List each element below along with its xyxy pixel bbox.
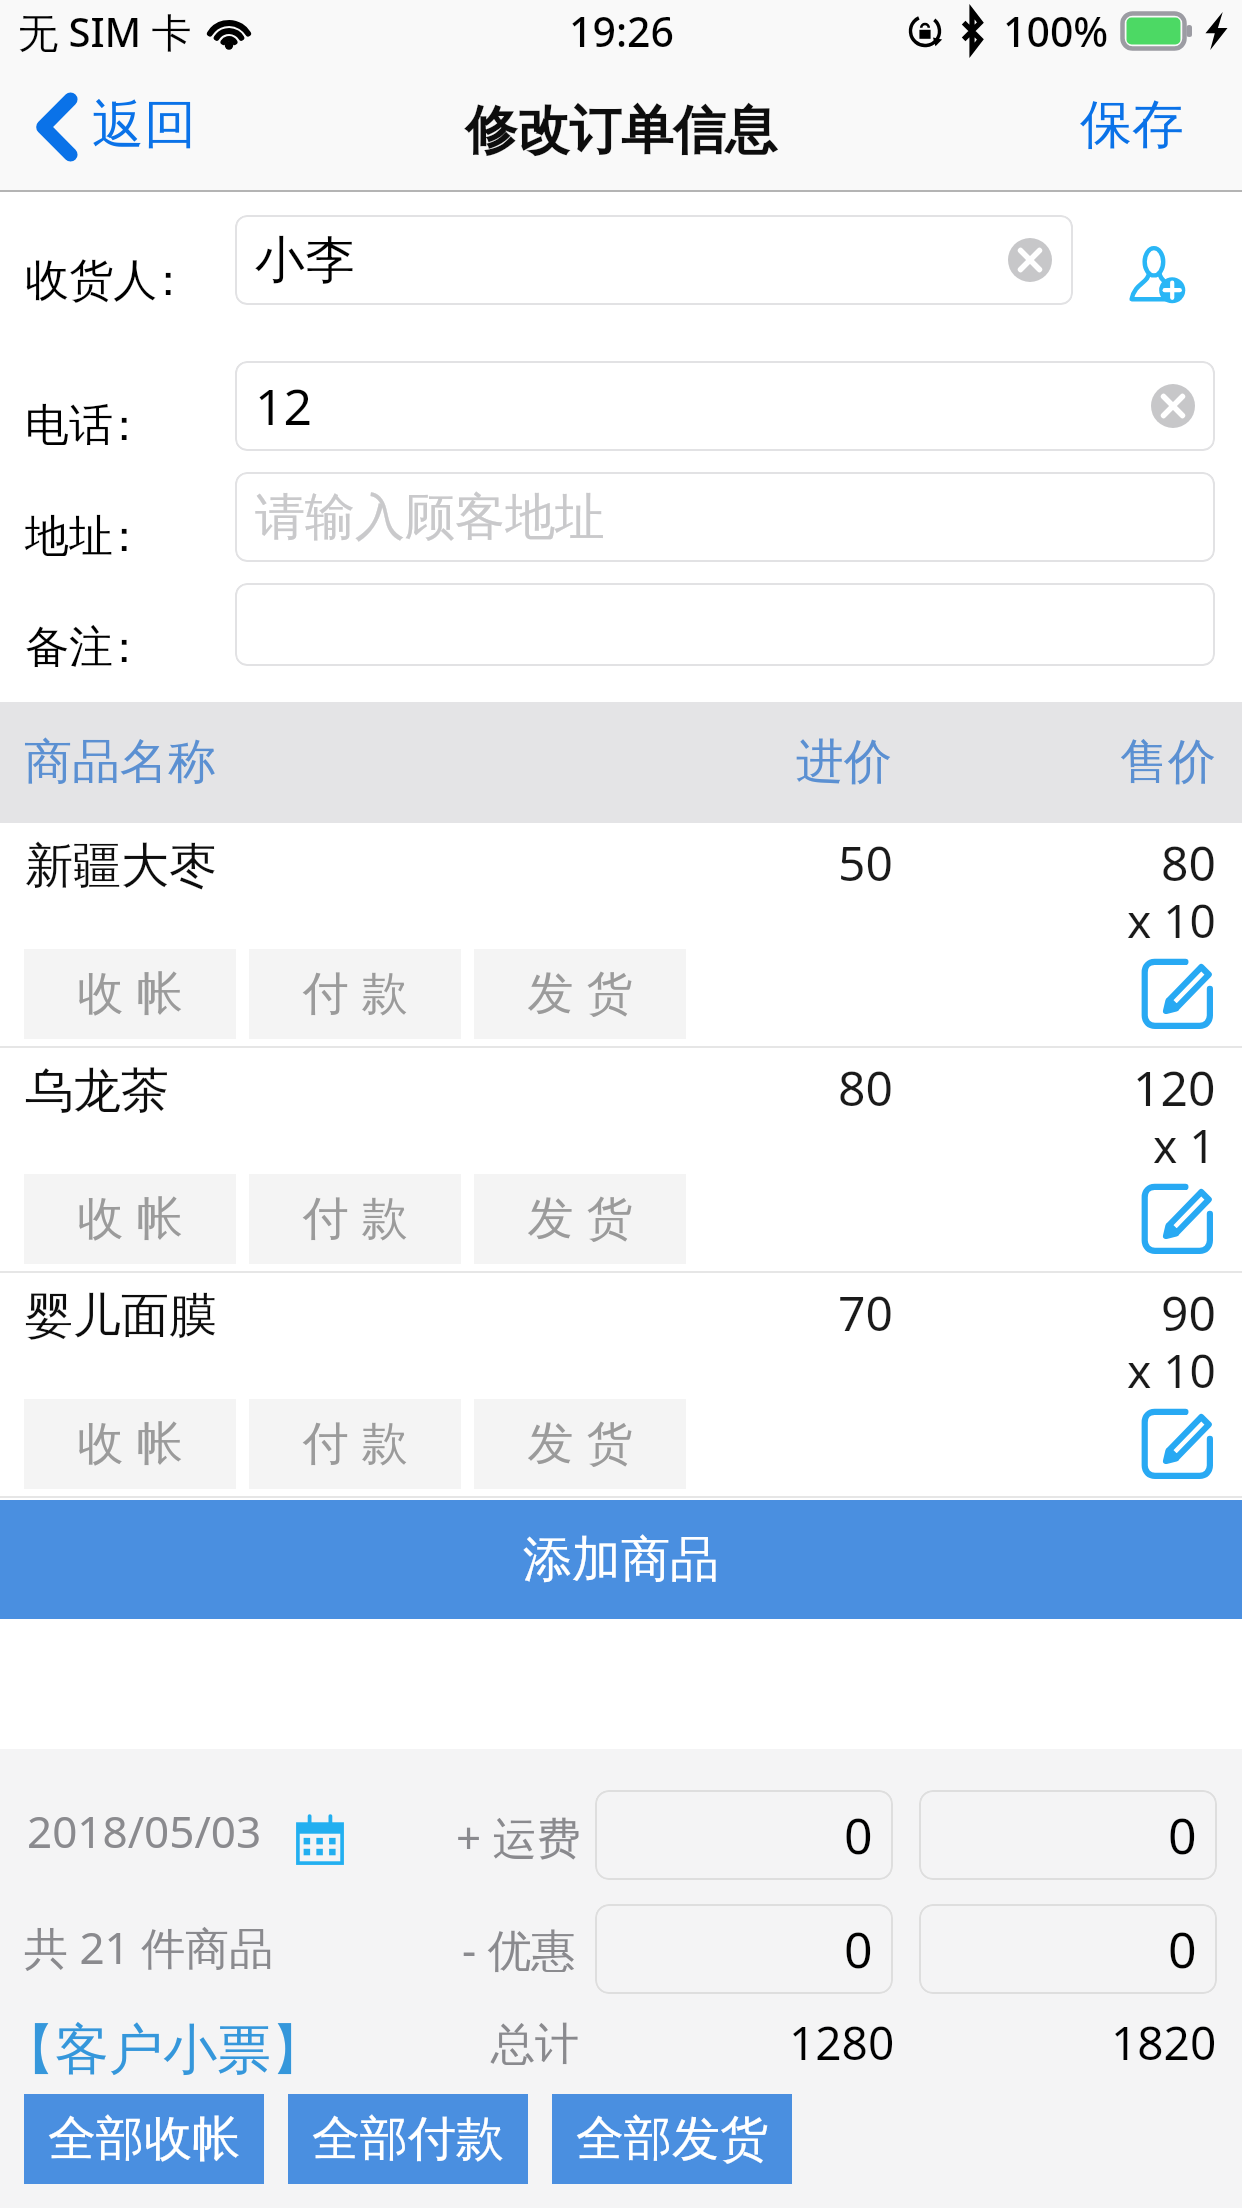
staticText: 添加商品 [523, 1529, 719, 1591]
staticText: 80 [1161, 830, 1216, 895]
staticText: ： [102, 509, 146, 564]
staticText: 无 SIM 卡 [18, 4, 192, 59]
button[interactable]: Clear [1151, 384, 1195, 428]
button[interactable]: 付款 [249, 1399, 461, 1489]
staticText: 0 [844, 1801, 873, 1869]
button[interactable]: 0 [919, 1790, 1217, 1880]
staticText: 婴儿面膜 [25, 1286, 217, 1346]
staticText: ： [102, 398, 146, 453]
staticText: 付款 [296, 1190, 414, 1248]
staticText: 收货人 [25, 253, 157, 308]
button[interactable]: 全部付款 [288, 2094, 528, 2184]
staticText: + 运费 [456, 1807, 581, 1867]
staticText: 商品名称 [24, 732, 216, 792]
button[interactable]: 全部发货 [552, 2094, 792, 2184]
button[interactable]: 全部收帐 [24, 2094, 264, 2184]
staticText: 总计 [491, 2017, 579, 2072]
staticText: 全部发货 [576, 2109, 768, 2169]
staticText: 保存 [1080, 92, 1184, 158]
staticText: 90 [1161, 1280, 1216, 1345]
staticText: 新疆大枣 [25, 836, 217, 896]
button[interactable]: 发货 [474, 1174, 686, 1264]
button[interactable]: 0 [919, 1904, 1217, 1994]
button[interactable]: 【客户小票】 [1, 2016, 325, 2084]
button[interactable]: Edit item [1138, 954, 1217, 1033]
button[interactable]: 添加商品 [0, 1500, 1242, 1619]
staticText: ： [146, 253, 190, 308]
button[interactable]: Edit item [1138, 1404, 1217, 1483]
staticText: 进价 [796, 732, 892, 792]
button[interactable]: 发货 [474, 1399, 686, 1489]
button[interactable]: 收帐 [24, 1174, 236, 1264]
staticText: 修改订单信息 [465, 98, 777, 164]
staticText: 请输入顾客地址 [255, 486, 605, 549]
staticText: 1820 [1111, 2011, 1217, 2074]
staticText: 乌龙茶 [25, 1061, 169, 1121]
button[interactable]: 0 [595, 1904, 893, 1994]
staticText: 返回 [92, 92, 196, 158]
staticText: 70 [838, 1280, 893, 1345]
staticText: 发货 [521, 965, 639, 1023]
staticText: x 10 [1127, 889, 1216, 952]
staticText: 80 [838, 1055, 893, 1120]
button[interactable]: 0 [595, 1790, 893, 1880]
staticText: 1280 [789, 2011, 895, 2074]
staticText: 0 [844, 1915, 873, 1983]
staticText: 100% [1003, 3, 1109, 59]
staticText: 0 [1168, 1801, 1197, 1869]
staticText: 付款 [296, 1415, 414, 1473]
button[interactable]: 12 [235, 361, 1215, 451]
button[interactable]: Clear [1008, 238, 1052, 282]
staticText: - 优惠 [462, 1919, 576, 1979]
staticText: 50 [838, 830, 893, 895]
staticText: 收帐 [71, 965, 189, 1023]
button[interactable]: Add contact [1129, 247, 1187, 305]
staticText: 收帐 [71, 1190, 189, 1248]
button[interactable]: 收帐 [24, 1399, 236, 1489]
button[interactable]: 付款 [249, 949, 461, 1039]
staticText: 发货 [521, 1190, 639, 1248]
staticText: 共 21 件商品 [24, 1917, 274, 1977]
button[interactable]: Edit item [1138, 1179, 1217, 1258]
button[interactable]: 付款 [249, 1174, 461, 1264]
button[interactable]: 收帐 [24, 949, 236, 1039]
staticText: 全部收帐 [48, 2109, 240, 2169]
staticText: 电话 [25, 398, 113, 453]
staticText: x 10 [1127, 1339, 1216, 1402]
staticText: 地址 [25, 509, 113, 564]
button[interactable]: 返回 [38, 62, 196, 192]
staticText: 售价 [1120, 732, 1216, 792]
staticText: 备注 [25, 620, 113, 675]
button[interactable]: Pick date [294, 1815, 346, 1867]
staticText: 19:26 [569, 3, 674, 59]
staticText: 发货 [521, 1415, 639, 1473]
staticText: 收帐 [71, 1415, 189, 1473]
staticText: x 1 [1153, 1114, 1216, 1177]
staticText: 小李 [255, 229, 355, 292]
button[interactable]: 请输入顾客地址 [235, 472, 1215, 562]
staticText: 付款 [296, 965, 414, 1023]
staticText: 120 [1133, 1055, 1216, 1120]
button[interactable]: 发货 [474, 949, 686, 1039]
button[interactable] [235, 583, 1215, 666]
staticText: ： [102, 620, 146, 675]
staticText: 12 [255, 372, 313, 440]
staticText: 2018/05/03 [27, 1801, 262, 1861]
staticText: 全部付款 [312, 2109, 504, 2169]
button[interactable]: 小李 [235, 215, 1073, 305]
staticText: 0 [1168, 1915, 1197, 1983]
staticText: 【客户小票】 [1, 2016, 325, 2084]
button[interactable]: 保存 [1080, 62, 1184, 192]
